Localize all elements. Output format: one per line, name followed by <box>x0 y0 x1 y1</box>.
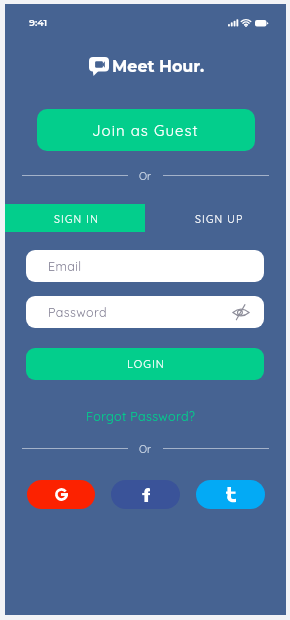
button[interactable]: Sign in with Google <box>27 480 95 509</box>
button[interactable]: Email <box>26 250 264 282</box>
staticText: LOGIN <box>127 357 165 371</box>
button[interactable]: SIGN IN <box>5 204 145 232</box>
button[interactable]: Join as Guest <box>37 109 255 151</box>
button[interactable]: Password <box>26 296 264 328</box>
button[interactable]: SIGN UP <box>145 204 286 232</box>
button[interactable]: Sign in with Facebook <box>111 480 180 509</box>
button[interactable]: LOGIN <box>26 348 264 380</box>
button[interactable]: Show password <box>230 301 252 323</box>
staticText: Or <box>139 442 152 455</box>
staticText: Password <box>48 304 107 320</box>
staticText: SIGN IN <box>54 212 100 225</box>
button[interactable]: Forgot Password? <box>86 408 196 424</box>
staticText: 9:41 <box>29 17 48 29</box>
staticText: SIGN UP <box>195 212 244 225</box>
staticText: Or <box>139 169 152 182</box>
staticText: Email <box>48 258 82 274</box>
staticText: Meet Hour. <box>112 57 205 77</box>
button[interactable]: Sign in with Twitter <box>196 480 265 509</box>
staticText: Join as Guest <box>92 121 199 140</box>
